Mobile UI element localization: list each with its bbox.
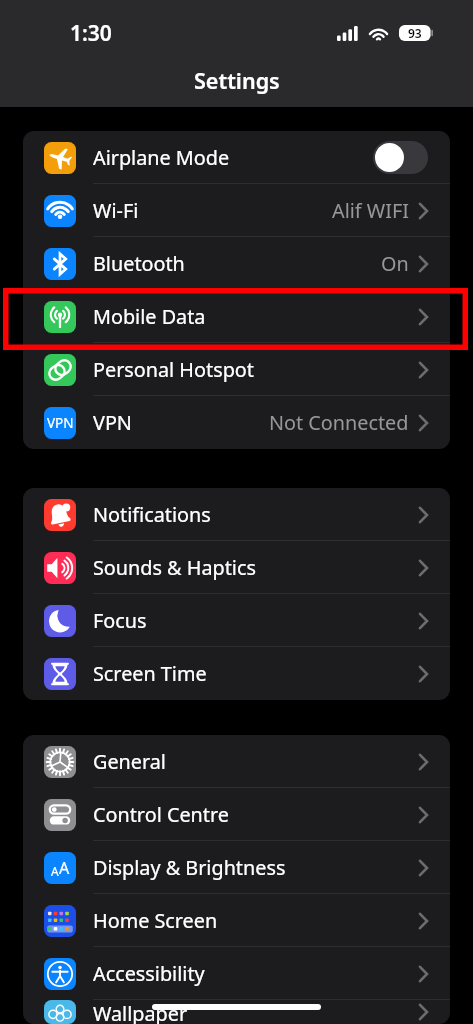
button[interactable]: Screen Time xyxy=(23,647,450,700)
staticText: Airplane Mode xyxy=(93,144,230,171)
button[interactable]: Focus xyxy=(23,594,450,647)
staticText: VPN xyxy=(93,409,132,436)
staticText: Screen Time xyxy=(93,660,207,687)
staticText: Sounds & Haptics xyxy=(93,554,256,581)
staticText: Mobile Data xyxy=(93,303,206,330)
staticText: Settings xyxy=(194,66,280,95)
staticText: A xyxy=(51,863,59,879)
button[interactable]: Mobile Data xyxy=(23,290,450,343)
staticText: Wi-Fi xyxy=(93,197,139,224)
button[interactable]: General xyxy=(23,735,450,788)
staticText: 93 xyxy=(408,25,422,41)
button[interactable]: Wi-Fi xyxy=(23,184,450,237)
staticText: VPN xyxy=(47,414,74,432)
button[interactable]: Personal Hotspot xyxy=(23,343,450,396)
staticText: A xyxy=(59,857,70,879)
button[interactable]: Toggle Airplane Mode xyxy=(373,141,428,174)
staticText: Alif WIFI xyxy=(332,197,409,224)
staticText: Control Centre xyxy=(93,801,229,828)
button[interactable]: Accessibility xyxy=(23,947,450,1000)
staticText: Not Connected xyxy=(269,409,409,436)
button[interactable]: Sounds & Haptics xyxy=(23,541,450,594)
staticText: General xyxy=(93,748,166,775)
staticText: Home Screen xyxy=(93,907,218,934)
button[interactable]: Home Screen xyxy=(23,894,450,947)
button[interactable]: Bluetooth xyxy=(23,237,450,290)
staticText: Bluetooth xyxy=(93,250,185,277)
staticText: Personal Hotspot xyxy=(93,356,254,383)
button[interactable]: Control Centre xyxy=(23,788,450,841)
staticText: Focus xyxy=(93,607,147,634)
staticText: On xyxy=(381,250,409,277)
button[interactable]: VPN xyxy=(23,396,450,449)
button[interactable]: Notifications xyxy=(23,488,450,541)
staticText: Accessibility xyxy=(93,960,205,987)
button[interactable]: Wallpaper xyxy=(23,1000,450,1024)
button[interactable]: A xyxy=(23,841,450,894)
button[interactable]: Airplane Mode xyxy=(23,131,450,184)
staticText: Display & Brightness xyxy=(93,854,286,881)
staticText: 1:30 xyxy=(70,19,112,48)
staticText: Wallpaper xyxy=(93,1000,188,1024)
staticText: Notifications xyxy=(93,501,211,528)
